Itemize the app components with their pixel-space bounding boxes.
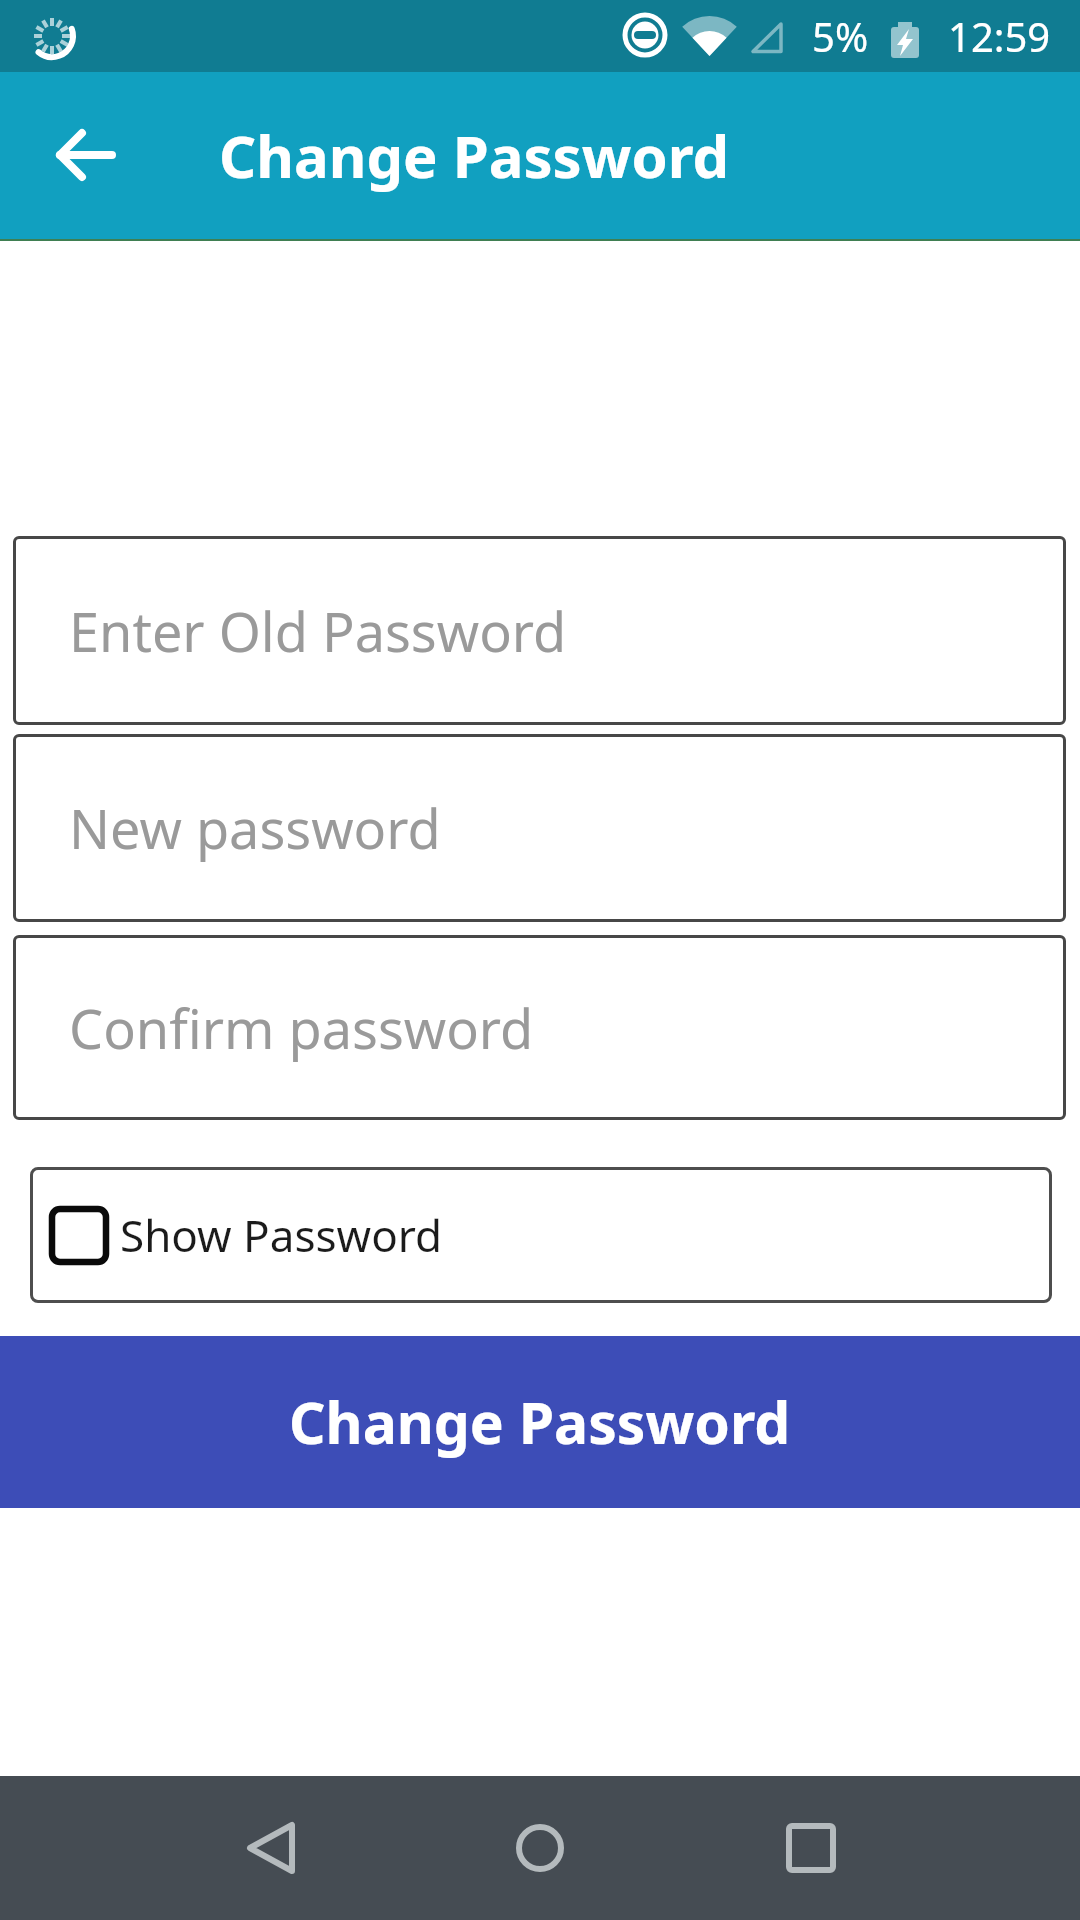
button[interactable]: New password (13, 734, 1066, 922)
staticText: Change Password (289, 1383, 791, 1461)
staticText: Confirm password (69, 991, 534, 1065)
button[interactable] (211, 1788, 331, 1908)
staticText: Enter Old Password (69, 594, 567, 668)
button[interactable] (480, 1788, 600, 1908)
button[interactable]: Change Password (0, 1336, 1080, 1508)
button[interactable]: Show Password (30, 1167, 1052, 1303)
button[interactable] (38, 107, 134, 203)
staticText: Change Password (219, 116, 730, 195)
button[interactable]: Confirm password (13, 935, 1066, 1120)
staticText: Show Password (120, 1205, 443, 1265)
staticText: New password (69, 791, 441, 865)
staticText: 12:59 (948, 9, 1051, 63)
button[interactable] (751, 1788, 871, 1908)
staticText: 5% (812, 9, 869, 63)
button[interactable]: Enter Old Password (13, 536, 1066, 725)
